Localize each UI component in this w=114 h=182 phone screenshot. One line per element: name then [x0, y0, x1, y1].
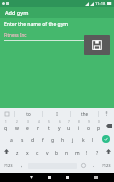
staticText: v: [46, 150, 49, 157]
button[interactable]: c: [32, 145, 42, 158]
staticText: 4: [38, 120, 40, 124]
button[interactable]: Add gym: [0, 7, 114, 18]
staticText: n: [65, 150, 69, 157]
staticText: j: [72, 137, 74, 144]
button[interactable]: s: [17, 132, 28, 145]
staticText: Enter the name of the gym: [4, 21, 69, 28]
staticText: i: [78, 125, 80, 132]
staticText: y: [58, 125, 61, 132]
staticText: z: [16, 150, 19, 157]
button[interactable]: Voice input: [99, 108, 114, 119]
staticText: 6: [59, 120, 61, 124]
staticText: c: [36, 150, 39, 157]
button[interactable]: Recents: [58, 173, 76, 182]
staticText: u: [67, 125, 71, 132]
button[interactable]: 3: [22, 119, 33, 132]
staticText: l: [92, 137, 94, 144]
button[interactable]: Backspace: [104, 119, 114, 132]
staticText: r: [37, 125, 40, 132]
button[interactable]: 6: [54, 119, 64, 132]
button[interactable]: 5: [44, 119, 54, 132]
staticText: t: [48, 125, 50, 132]
button[interactable]: the: [71, 108, 98, 119]
button[interactable]: k: [78, 132, 88, 145]
staticText: x: [26, 150, 29, 157]
staticText: o: [87, 125, 91, 132]
button[interactable]: 2: [11, 119, 22, 132]
staticText: h: [61, 137, 65, 144]
button[interactable]: .: [89, 158, 98, 173]
button[interactable]: Shift: [0, 145, 12, 158]
button[interactable]: ?123: [0, 158, 17, 173]
button[interactable]: Save: [84, 35, 110, 55]
staticText: ?123: [102, 163, 111, 168]
button[interactable]: l: [88, 132, 98, 145]
button[interactable]: h: [58, 132, 68, 145]
button[interactable]: d: [28, 132, 38, 145]
button[interactable]: Keyboard: [87, 173, 105, 182]
staticText: .: [93, 162, 95, 169]
button[interactable]: Shift: [102, 145, 114, 158]
staticText: 1: [5, 120, 7, 124]
button[interactable]: x: [22, 145, 32, 158]
staticText: w: [15, 125, 19, 132]
staticText: 0: [98, 120, 100, 124]
staticText: 5: [48, 120, 50, 124]
staticText: Add gym: [5, 9, 29, 16]
button[interactable]: ?123: [98, 158, 114, 173]
staticText: ?123: [4, 163, 13, 168]
staticText: 2: [16, 120, 18, 124]
button[interactable]: 4: [33, 119, 44, 132]
staticText: p: [97, 125, 101, 132]
button[interactable]: Home: [40, 173, 58, 182]
staticText: f: [42, 137, 44, 144]
staticText: s: [21, 137, 24, 144]
button[interactable]: Enter: [98, 132, 114, 145]
button[interactable]: z: [12, 145, 22, 158]
button[interactable]: b: [52, 145, 62, 158]
button[interactable]: [0, 108, 14, 119]
staticText: ,: [21, 162, 23, 169]
button[interactable]: n: [62, 145, 72, 158]
button[interactable]: ?: [92, 145, 102, 158]
staticText: 3: [27, 120, 29, 124]
staticText: e: [26, 125, 29, 132]
staticText: 11:18: [95, 1, 106, 6]
button[interactable]: m: [72, 145, 82, 158]
button[interactable]: 8: [74, 119, 84, 132]
button[interactable]: Emoji: [78, 158, 89, 173]
button[interactable]: I: [43, 108, 70, 119]
staticText: Fitness Inc: [4, 32, 27, 38]
staticText: the: [81, 111, 88, 117]
button[interactable]: Back: [22, 173, 40, 182]
staticText: to: [26, 111, 31, 117]
staticText: 9: [88, 120, 90, 124]
button[interactable]: f: [38, 132, 48, 145]
staticText: d: [31, 137, 35, 144]
button[interactable]: j: [68, 132, 78, 145]
button[interactable]: 0: [94, 119, 104, 132]
staticText: 7: [68, 120, 70, 124]
staticText: g: [51, 137, 55, 144]
button[interactable]: ,: [17, 158, 27, 173]
staticText: b: [55, 150, 59, 157]
staticText: m: [75, 150, 80, 157]
staticText: a: [10, 137, 13, 144]
button[interactable]: g: [48, 132, 58, 145]
staticText: q: [4, 125, 8, 132]
staticText: k: [82, 137, 85, 144]
button[interactable]: a: [6, 132, 17, 145]
button[interactable]: 1: [0, 119, 11, 132]
button[interactable]: !: [82, 145, 92, 158]
button[interactable]: 9: [84, 119, 94, 132]
button[interactable]: to: [15, 108, 42, 119]
button[interactable]: v: [42, 145, 52, 158]
staticText: I: [56, 111, 58, 117]
staticText: 8: [78, 120, 80, 124]
staticText: ?: [96, 150, 99, 157]
staticText: !: [86, 150, 88, 157]
button[interactable]: 7: [64, 119, 74, 132]
